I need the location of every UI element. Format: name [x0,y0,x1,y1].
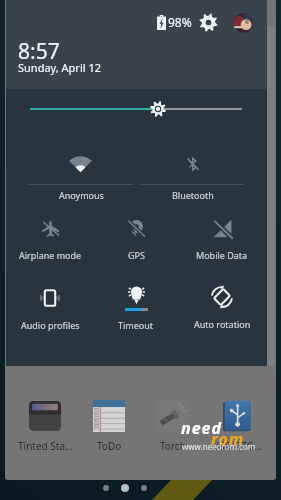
staticText: need [181,417,222,439]
staticText: Sunday, April 12 [18,60,102,75]
button[interactable]: Airplane mode [7,214,93,263]
button[interactable]: Anoymous [21,145,141,203]
button[interactable]: Audio profiles [7,284,93,333]
staticText: 8:57 [18,37,60,66]
staticText: rom [211,428,245,450]
staticText: Tinted Sta… [18,439,73,453]
staticText: Torch [160,439,186,453]
staticText: Mobile Data [196,249,248,261]
button[interactable]: Settings [196,10,220,34]
button[interactable]: Bluetooth [133,145,252,203]
button[interactable]: Brightness [22,98,250,120]
staticText: USB OTG… [212,439,262,453]
staticText: Audio profiles [21,319,80,331]
button[interactable]: Tinted Sta… [13,396,77,454]
button[interactable]: Torch [141,396,205,454]
staticText: 98% [168,14,192,30]
button[interactable]: Mobile Data [179,213,265,263]
button[interactable]: User account [233,13,253,33]
staticText: Anoymous [59,189,104,201]
staticText: Bluetooth [172,189,214,201]
button[interactable]: ToDo [77,396,141,454]
staticText: Airplane mode [19,249,82,261]
staticText: GPS [128,249,145,261]
button[interactable]: USB OTG… [205,396,269,454]
staticText: ToDo [97,439,122,453]
staticText: www.needrom.com [182,441,256,452]
staticText: Auto rotation [194,318,251,330]
button[interactable]: Timeout [93,280,179,333]
button[interactable]: GPS [93,214,179,263]
button[interactable]: Auto rotation [179,280,265,332]
staticText: Timeout [118,319,154,331]
